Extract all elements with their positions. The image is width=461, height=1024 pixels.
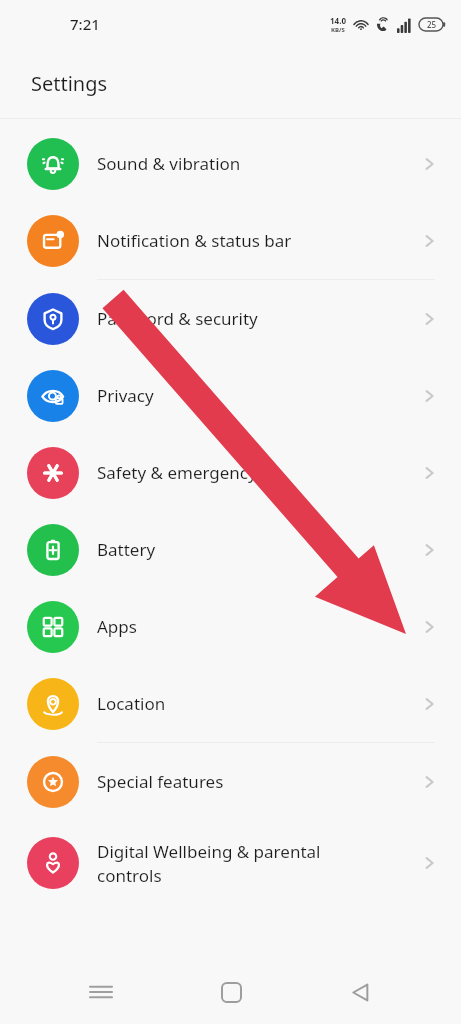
button[interactable]: Battery [0, 511, 461, 588]
staticText: 7:21 [70, 14, 100, 34]
staticText: Apps [97, 615, 419, 638]
button[interactable]: Privacy [0, 357, 461, 434]
button[interactable]: Password & security [0, 280, 461, 357]
button[interactable]: Special features [0, 743, 461, 820]
staticText: 25 [427, 19, 437, 30]
staticText: Special features [97, 770, 419, 793]
button[interactable]: Location [0, 665, 461, 742]
staticText: Sound & vibration [97, 152, 419, 175]
staticText: Password & security [97, 307, 419, 330]
staticText: KB/S [331, 26, 345, 34]
staticText: Settings [31, 70, 108, 97]
staticText: 14.0 [330, 15, 346, 26]
staticText: Digital Wellbeing & parental controls [97, 840, 419, 887]
staticText: Safety & emergency [97, 461, 419, 484]
button[interactable]: Digital Wellbeing & parental controls [0, 820, 461, 906]
button[interactable]: Apps [0, 588, 461, 665]
button[interactable]: Safety & emergency [0, 434, 461, 511]
staticText: Location [97, 692, 419, 715]
button[interactable]: Back [332, 964, 388, 1020]
button[interactable]: Home [203, 964, 259, 1020]
button[interactable]: Recent apps [73, 964, 129, 1020]
button[interactable]: Notification & status bar [0, 202, 461, 279]
button[interactable]: Sound & vibration [0, 125, 461, 202]
staticText: Battery [97, 538, 419, 561]
staticText: Privacy [97, 384, 419, 407]
staticText: Notification & status bar [97, 229, 419, 252]
